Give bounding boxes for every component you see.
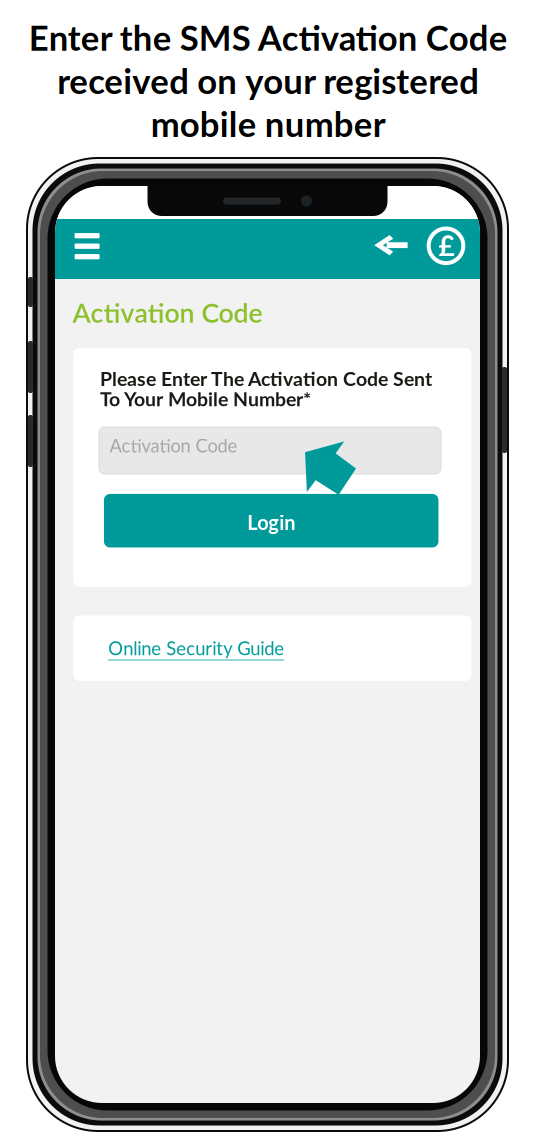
staticText: Activation Code <box>72 296 262 328</box>
staticText: Please Enter The Activation Code Sent To… <box>100 367 456 410</box>
button[interactable]: Menu <box>61 216 114 276</box>
staticText: Activation Code <box>109 434 237 456</box>
button[interactable]: Accounts <box>420 216 472 276</box>
staticText: £ <box>438 228 454 262</box>
staticText: Login <box>247 510 295 534</box>
button[interactable]: Back <box>364 215 418 275</box>
button[interactable]: Login <box>104 494 438 547</box>
button[interactable]: Online Security Guide <box>73 615 471 681</box>
staticText: Enter the SMS Activation Code received o… <box>28 17 507 144</box>
staticText: Online Security Guide <box>108 637 284 659</box>
